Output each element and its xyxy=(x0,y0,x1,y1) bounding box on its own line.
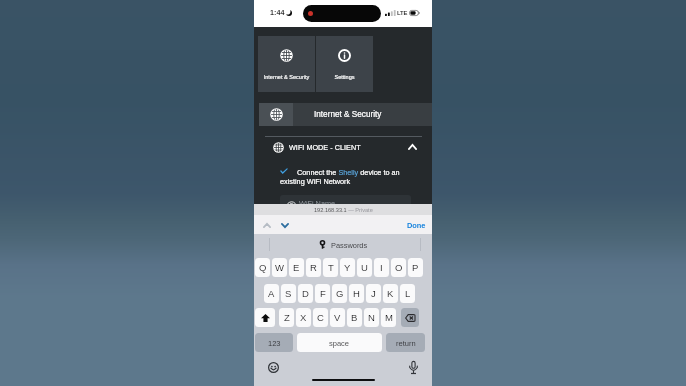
staticText: E xyxy=(293,262,300,273)
staticText: U xyxy=(361,262,368,273)
button[interactable]: Y xyxy=(340,258,355,277)
staticText: Passwords xyxy=(331,241,368,249)
staticText: 1:44 xyxy=(270,8,285,16)
staticText: I xyxy=(380,262,383,273)
staticText: S xyxy=(285,288,292,299)
staticText: Internet & Security xyxy=(258,74,315,80)
button[interactable]: P xyxy=(408,258,423,277)
staticText: Internet & Security xyxy=(314,110,382,119)
staticText: P xyxy=(412,262,419,273)
staticText: L xyxy=(405,288,411,299)
staticText: Z xyxy=(284,312,290,323)
staticText: Q xyxy=(259,262,267,273)
button[interactable]: Emoji keyboard xyxy=(265,359,281,375)
staticText: LTE xyxy=(397,10,408,17)
staticText: N xyxy=(368,312,375,323)
button[interactable]: return xyxy=(386,333,425,352)
button[interactable]: I xyxy=(374,258,389,277)
staticText: WIFI MODE - CLIENT xyxy=(289,143,361,151)
button[interactable]: E xyxy=(289,258,304,277)
button[interactable]: Internet & Security xyxy=(259,103,432,126)
button[interactable]: Collapse section xyxy=(404,139,420,155)
button[interactable]: Done xyxy=(404,217,428,233)
staticText: Done xyxy=(407,221,426,229)
staticText: V xyxy=(334,312,341,323)
staticText: return xyxy=(396,339,416,347)
staticText: WiFi Name xyxy=(299,199,336,207)
staticText: M xyxy=(385,312,393,323)
staticText: existing WiFi Network xyxy=(280,177,351,185)
button[interactable]: 123 xyxy=(255,333,293,352)
button[interactable]: U xyxy=(357,258,372,277)
button[interactable]: N xyxy=(364,308,379,327)
button[interactable]: S xyxy=(281,284,296,303)
button[interactable]: G xyxy=(332,284,347,303)
staticText: X xyxy=(300,312,307,323)
staticText: 192.168.33.1 — Private xyxy=(314,207,373,213)
button[interactable]: Backspace xyxy=(401,308,419,327)
button[interactable]: X xyxy=(296,308,311,327)
button[interactable]: Passwords xyxy=(320,238,368,251)
staticText: T xyxy=(328,262,334,273)
button[interactable]: R xyxy=(306,258,321,277)
staticText: C xyxy=(317,312,324,323)
button[interactable]: J xyxy=(366,284,381,303)
button[interactable]: O xyxy=(391,258,406,277)
button[interactable]: W xyxy=(272,258,287,277)
button[interactable]: Shift xyxy=(255,308,275,327)
button[interactable]: C xyxy=(313,308,328,327)
staticText: W xyxy=(275,262,284,273)
button[interactable]: Next field xyxy=(277,218,293,232)
button[interactable]: T xyxy=(323,258,338,277)
button[interactable]: F xyxy=(315,284,330,303)
button[interactable]: K xyxy=(383,284,398,303)
button[interactable]: Internet & Security xyxy=(258,36,315,92)
button[interactable]: D xyxy=(298,284,313,303)
button[interactable]: Dictation xyxy=(405,359,421,375)
button[interactable]: space xyxy=(297,333,382,352)
staticText: 123 xyxy=(268,339,281,347)
button[interactable]: M xyxy=(381,308,396,327)
staticText: D xyxy=(302,288,309,299)
button[interactable]: L xyxy=(400,284,415,303)
button[interactable]: Z xyxy=(279,308,294,327)
button[interactable]: H xyxy=(349,284,364,303)
staticText: Y xyxy=(344,262,351,273)
button[interactable]: Q xyxy=(255,258,270,277)
staticText: F xyxy=(320,288,326,299)
staticText: H xyxy=(353,288,360,299)
staticText: space xyxy=(329,339,350,347)
button[interactable]: WIFI MODE - CLIENT xyxy=(265,137,422,157)
staticText: J xyxy=(371,288,376,299)
button[interactable]: Previous field xyxy=(259,218,275,232)
staticText: A xyxy=(268,288,275,299)
staticText: O xyxy=(395,262,403,273)
staticText: B xyxy=(351,312,358,323)
staticText: G xyxy=(336,288,344,299)
staticText: Settings xyxy=(316,74,373,80)
button[interactable]: V xyxy=(330,308,345,327)
button[interactable]: A xyxy=(264,284,279,303)
staticText: R xyxy=(310,262,317,273)
button[interactable]: B xyxy=(347,308,362,327)
button[interactable]: Settings xyxy=(316,36,373,92)
staticText: Connect the Shelly device to an xyxy=(297,168,400,176)
button[interactable]: WiFi Name xyxy=(280,195,411,211)
staticText: K xyxy=(387,288,394,299)
